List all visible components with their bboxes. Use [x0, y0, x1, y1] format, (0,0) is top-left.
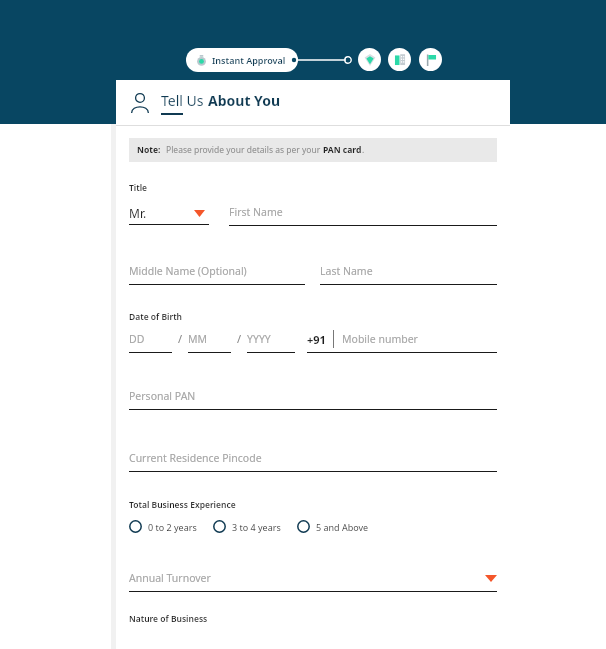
staticText: Middle Name (Optional) [129, 264, 247, 278]
staticText: Note: [137, 144, 161, 156]
staticText: Title [129, 182, 148, 194]
staticText: Mobile number [342, 332, 418, 346]
staticText: / [237, 331, 242, 346]
button[interactable]: Last Name [320, 261, 497, 285]
button[interactable]: Instant Approval [186, 48, 298, 72]
button[interactable]: 5 and Above [297, 520, 369, 533]
staticText: 0 to 2 years [148, 521, 197, 533]
staticText: DD [129, 332, 145, 346]
button[interactable]: 3 to 4 years [213, 520, 281, 533]
staticText: 3 to 4 years [232, 521, 281, 533]
button[interactable]: 0 to 2 years [129, 520, 197, 533]
staticText: . [362, 144, 365, 156]
staticText: Date of Birth [129, 311, 183, 323]
button[interactable]: Annual Turnover [129, 571, 497, 592]
staticText: Annual Turnover [129, 571, 211, 585]
staticText: MM [188, 332, 208, 346]
staticText: Current Residence Pincode [129, 451, 262, 465]
button[interactable]: First Name [229, 202, 497, 226]
staticText: Please provide your details as per your [166, 144, 323, 156]
button[interactable]: Tell Us [116, 80, 510, 125]
button[interactable]: Business details step [388, 48, 411, 71]
staticText: Personal PAN [129, 389, 196, 403]
button[interactable]: Middle Name (Optional) [129, 261, 305, 285]
button[interactable]: Personal PAN [129, 386, 497, 410]
staticText: +91 [307, 332, 326, 347]
button[interactable]: YYYY [247, 329, 295, 353]
staticText: Mr. [129, 205, 147, 221]
button[interactable]: Loan amount step [358, 48, 381, 71]
staticText: Nature of Business [129, 613, 208, 625]
staticText: First Name [229, 205, 283, 219]
button[interactable]: Finish step [419, 48, 442, 71]
button[interactable]: MM [188, 329, 231, 353]
staticText: About You [208, 91, 281, 110]
staticText: PAN card [323, 144, 362, 156]
staticText: Total Business Experience [129, 499, 236, 511]
button[interactable]: Mr. [129, 202, 209, 225]
staticText: Last Name [320, 264, 373, 278]
button[interactable]: +91 [307, 330, 497, 353]
button[interactable]: Current Residence Pincode [129, 448, 497, 472]
button[interactable]: DD [129, 329, 172, 353]
staticText: Tell Us [161, 91, 208, 110]
staticText: 5 and Above [316, 521, 369, 533]
staticText: / [178, 331, 183, 346]
staticText: Instant Approval [212, 54, 286, 66]
staticText: YYYY [247, 332, 271, 346]
